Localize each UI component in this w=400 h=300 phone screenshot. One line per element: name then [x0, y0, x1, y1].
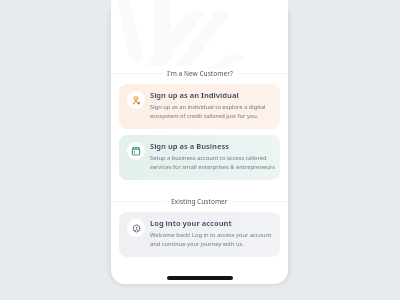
- other: Individual: [132, 96, 141, 105]
- staticText: Sign up as a Business: [150, 141, 229, 151]
- button[interactable]: Individual: [119, 84, 280, 129]
- other: Business: [131, 146, 141, 156]
- button[interactable]: Business: [119, 135, 280, 180]
- staticText: Setup a business account to access tailo…: [150, 154, 276, 171]
- button[interactable]: Log in: [119, 212, 280, 257]
- staticText: Sign up as an Individual: [150, 90, 239, 100]
- staticText: Existing Customer: [171, 197, 228, 206]
- staticText: I'm a New Customer?: [167, 69, 233, 78]
- staticText: Welcome back! Log in to access your acco…: [150, 231, 276, 248]
- staticText: Log into your account: [150, 218, 232, 228]
- staticText: Sign up as an individual to explore a di…: [150, 103, 276, 120]
- other: Log in: [132, 224, 141, 233]
